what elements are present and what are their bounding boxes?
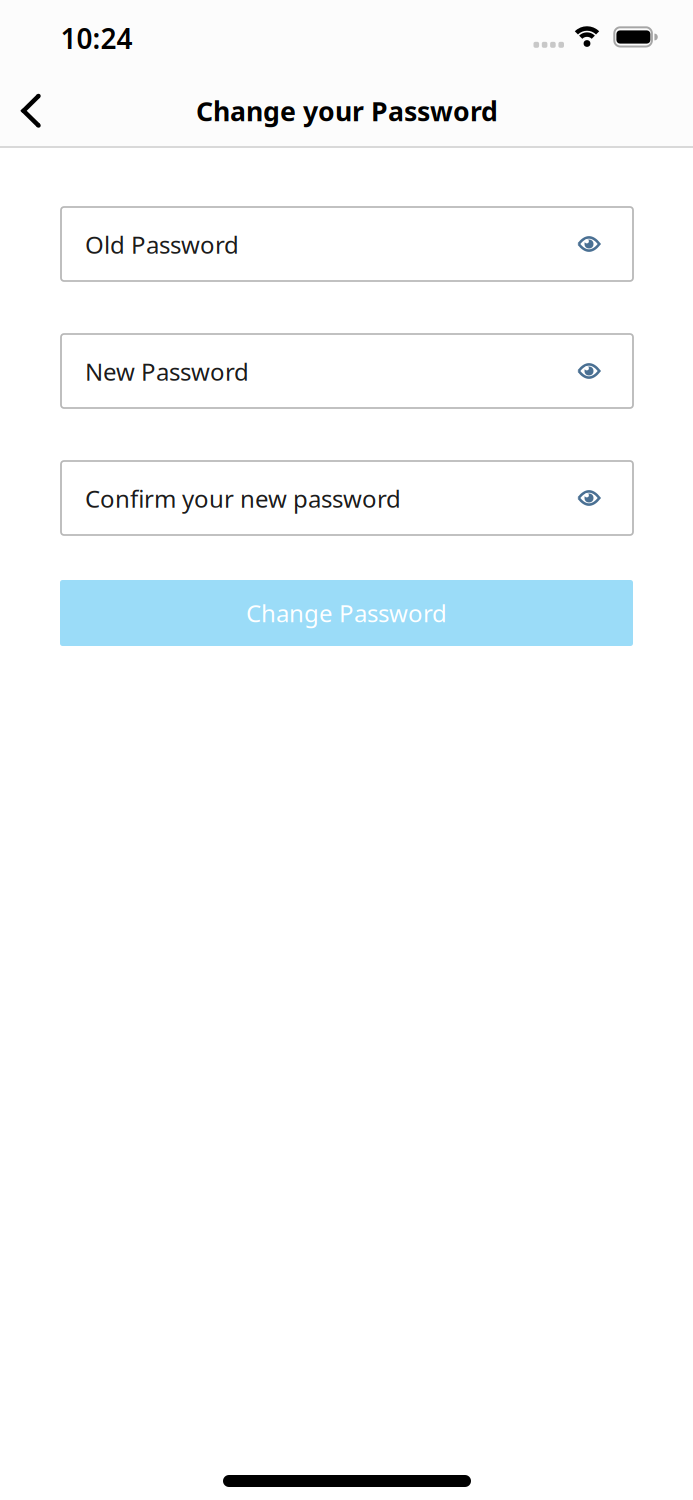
staticText: 10:24 [60, 20, 132, 57]
staticText: Change your Password [196, 93, 498, 128]
staticText: Change Password [246, 597, 447, 629]
staticText: Confirm your new password [85, 483, 401, 514]
staticText: Old Password [85, 229, 239, 260]
staticText: New Password [85, 356, 249, 387]
